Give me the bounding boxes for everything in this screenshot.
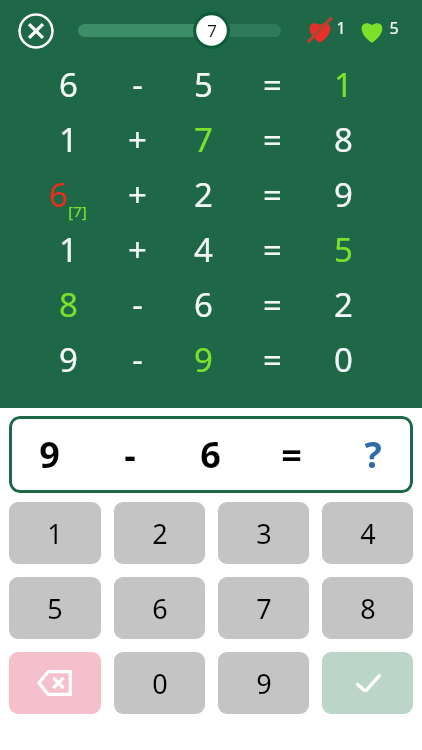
- button[interactable]: 8: [322, 577, 413, 639]
- staticText: 8: [59, 282, 78, 327]
- staticText: 2: [152, 515, 168, 552]
- button[interactable]: Close: [18, 13, 54, 49]
- staticText: 6: [194, 282, 213, 327]
- staticText: 5: [334, 227, 353, 272]
- button[interactable]: 7: [218, 577, 309, 639]
- staticText: 6: [200, 430, 221, 479]
- staticText: ?: [364, 430, 382, 479]
- button[interactable]: 9: [218, 652, 309, 714]
- staticText: 2: [334, 282, 353, 327]
- staticText: 2: [194, 172, 213, 217]
- staticText: 1: [334, 62, 353, 107]
- staticText: 9: [39, 430, 60, 479]
- button[interactable]: Submit answer: [322, 652, 413, 714]
- staticText: 1: [336, 17, 346, 39]
- staticText: 7: [194, 117, 213, 162]
- staticText: 7: [207, 19, 217, 42]
- staticText: =: [263, 337, 282, 382]
- staticText: -: [132, 337, 143, 382]
- staticText: =: [263, 117, 282, 162]
- staticText: =: [281, 430, 302, 479]
- staticText: 8: [360, 590, 376, 627]
- button[interactable]: 9: [9, 416, 413, 493]
- staticText: 8: [334, 117, 353, 162]
- staticText: 6: [59, 62, 78, 107]
- button[interactable]: 2: [114, 502, 205, 564]
- staticText: 1: [47, 515, 63, 552]
- staticText: 0: [334, 337, 353, 382]
- staticText: 4: [360, 515, 376, 552]
- staticText: 6: [49, 172, 68, 217]
- button[interactable]: 5: [9, 577, 101, 639]
- staticText: 3: [256, 515, 272, 552]
- button[interactable]: 0: [114, 652, 205, 714]
- staticText: +: [128, 227, 147, 272]
- button[interactable]: 3: [218, 502, 309, 564]
- staticText: 9: [59, 337, 78, 382]
- staticText: 5: [47, 590, 63, 627]
- staticText: 1: [59, 117, 78, 162]
- staticText: 0: [152, 665, 168, 702]
- button[interactable]: 6: [114, 577, 205, 639]
- staticText: 5: [389, 17, 399, 39]
- staticText: 4: [194, 227, 213, 272]
- button[interactable]: 4: [322, 502, 413, 564]
- staticText: 9: [194, 337, 213, 382]
- staticText: -: [132, 282, 143, 327]
- staticText: =: [263, 62, 282, 107]
- staticText: =: [263, 227, 282, 272]
- staticText: 7: [256, 590, 272, 627]
- staticText: 9: [334, 172, 353, 217]
- staticText: 5: [194, 62, 213, 107]
- button[interactable]: 1: [9, 502, 101, 564]
- staticText: +: [128, 117, 147, 162]
- staticText: 9: [256, 665, 272, 702]
- staticText: -: [124, 430, 136, 479]
- staticText: =: [263, 282, 282, 327]
- staticText: [7]: [68, 201, 87, 221]
- staticText: +: [128, 172, 147, 217]
- button[interactable]: Backspace: [9, 652, 101, 714]
- staticText: -: [132, 62, 143, 107]
- staticText: 1: [59, 227, 78, 272]
- staticText: =: [263, 172, 282, 217]
- staticText: 6: [152, 590, 168, 627]
